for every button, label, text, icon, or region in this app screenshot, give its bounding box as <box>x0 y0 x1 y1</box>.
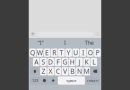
staticText: B <box>70 67 74 76</box>
staticText: F <box>56 57 59 66</box>
staticText: G <box>62 57 67 66</box>
staticText: X <box>49 67 53 76</box>
button[interactable]: I <box>80 48 86 57</box>
button[interactable]: S <box>40 58 47 66</box>
staticText: The <box>85 39 94 46</box>
staticText: H <box>70 57 75 66</box>
button[interactable]: L <box>90 58 97 66</box>
button[interactable]: 123 <box>30 76 40 85</box>
staticText: E <box>45 48 49 57</box>
staticText: M <box>84 67 90 76</box>
button[interactable]: T <box>58 48 65 57</box>
button[interactable]: E <box>44 48 50 57</box>
staticText: D <box>48 57 53 66</box>
button[interactable]: A <box>33 58 40 66</box>
button[interactable]: Dictation <box>49 76 57 85</box>
staticText: L <box>92 57 95 66</box>
button[interactable]: W <box>36 48 43 57</box>
button[interactable]: Y <box>65 48 72 57</box>
button[interactable]: Shift <box>30 67 39 75</box>
button[interactable]: K <box>83 58 90 66</box>
staticText: R <box>52 48 56 57</box>
staticText: J <box>78 57 80 66</box>
button[interactable]: J <box>76 58 83 66</box>
staticText: K <box>85 57 89 66</box>
staticText: T <box>59 48 63 57</box>
button[interactable]: G <box>62 58 68 66</box>
staticText: V <box>63 67 67 76</box>
button[interactable]: X <box>47 67 54 75</box>
button[interactable]: C <box>54 67 61 75</box>
button[interactable]: “I” <box>29 38 53 47</box>
staticText: S <box>41 57 45 66</box>
button[interactable]: U <box>72 48 79 57</box>
button[interactable]: H <box>69 58 76 66</box>
button[interactable]: R <box>51 48 58 57</box>
button[interactable]: P <box>94 48 101 57</box>
staticText: return <box>87 78 98 83</box>
staticText: Z <box>41 67 45 76</box>
button[interactable]: Add attachment <box>31 32 35 36</box>
staticText: N <box>77 67 82 76</box>
staticText: P <box>95 48 99 57</box>
button[interactable]: M <box>83 67 90 75</box>
button[interactable]: D <box>47 58 54 66</box>
button[interactable]: Emoji <box>40 76 48 85</box>
button[interactable]: The <box>77 38 101 47</box>
button[interactable]: Delete <box>90 67 100 75</box>
staticText: A <box>34 57 38 66</box>
button[interactable]: space <box>58 76 85 85</box>
button[interactable]: Z <box>40 67 47 75</box>
staticText: W <box>37 48 43 57</box>
button[interactable]: Q <box>29 48 36 57</box>
button[interactable]: O <box>87 48 94 57</box>
button[interactable]: F <box>54 58 61 66</box>
staticText: U <box>73 48 78 57</box>
staticText: C <box>56 67 60 76</box>
staticText: 123 <box>32 78 38 83</box>
staticText: I <box>64 39 66 46</box>
button[interactable]: return <box>85 76 100 85</box>
button[interactable]: N <box>76 67 83 75</box>
button[interactable]: I <box>53 38 77 47</box>
staticText: “I” <box>38 39 44 46</box>
staticText: + <box>31 31 34 38</box>
staticText: Q <box>30 48 35 57</box>
button[interactable]: B <box>69 67 76 75</box>
staticText: Y <box>67 48 71 57</box>
staticText: I <box>82 48 84 57</box>
button[interactable]: V <box>62 67 68 75</box>
staticText: O <box>88 48 93 57</box>
staticText: space <box>66 78 76 83</box>
